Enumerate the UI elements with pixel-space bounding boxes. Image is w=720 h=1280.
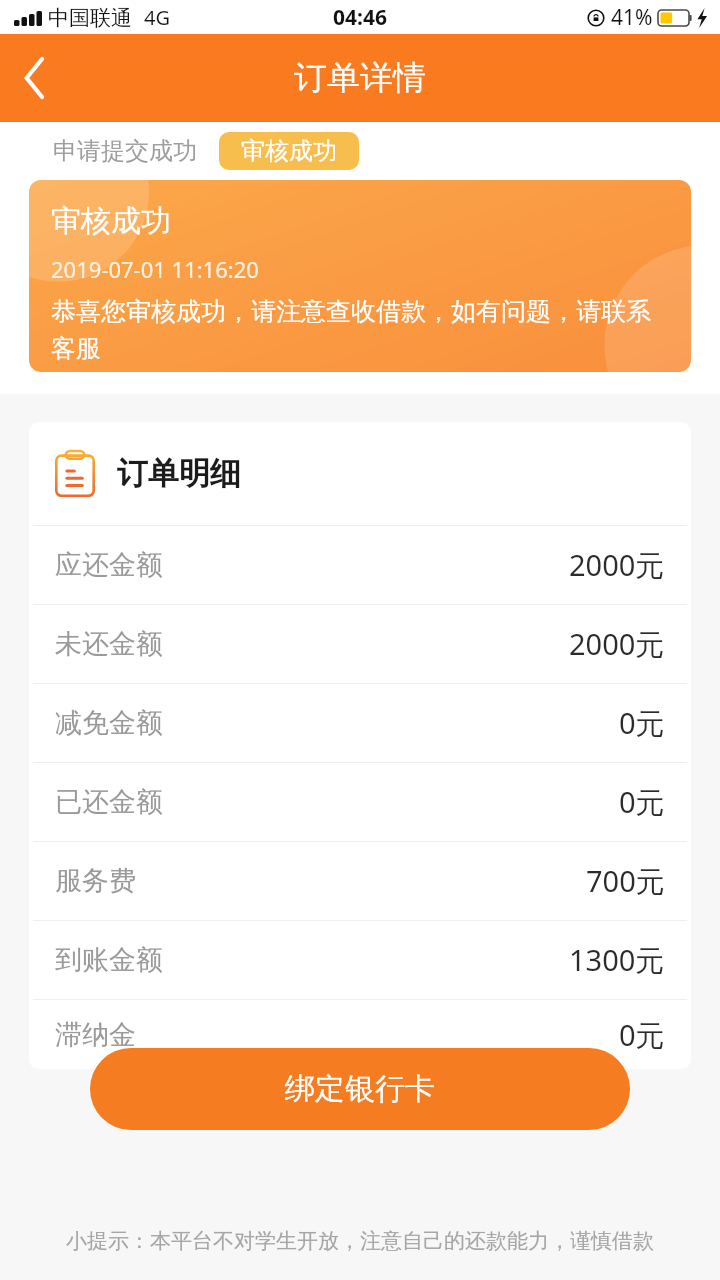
- button[interactable]: 到账金额: [29, 921, 691, 999]
- staticText: 申请提交成功: [53, 136, 197, 166]
- button[interactable]: Back: [0, 43, 70, 113]
- staticText: 04:46: [333, 3, 387, 32]
- button[interactable]: 应还金额: [29, 526, 691, 604]
- button[interactable]: 服务费: [29, 842, 691, 920]
- staticText: 审核成功: [241, 136, 337, 166]
- staticText: 绑定银行卡: [285, 1070, 435, 1108]
- staticText: 2000元: [569, 545, 665, 585]
- button[interactable]: 减免金额: [29, 684, 691, 762]
- button[interactable]: 审核成功: [219, 132, 359, 170]
- button[interactable]: 审核成功: [29, 180, 691, 372]
- staticText: 订单明细: [117, 454, 241, 493]
- staticText: 4G: [144, 4, 170, 31]
- staticText: 700元: [586, 861, 665, 901]
- button[interactable]: 未还金额: [29, 605, 691, 683]
- staticText: 小提示：本平台不对学生开放，注意自己的还款能力，谨慎借款: [66, 1228, 654, 1254]
- staticText: 恭喜您审核成功，请注意查收借款，如有问题，请联系客服: [51, 296, 663, 364]
- staticText: 中国联通: [48, 5, 132, 31]
- staticText: 到账金额: [55, 943, 163, 977]
- staticText: 减免金额: [55, 706, 163, 740]
- staticText: 已还金额: [55, 785, 163, 819]
- staticText: 审核成功: [51, 202, 171, 240]
- staticText: 未还金额: [55, 627, 163, 661]
- staticText: 0元: [619, 1015, 665, 1055]
- staticText: 0元: [619, 703, 665, 743]
- staticText: 滞纳金: [55, 1018, 136, 1052]
- staticText: 1300元: [569, 940, 665, 980]
- button[interactable]: 绑定银行卡: [90, 1048, 630, 1130]
- staticText: 应还金额: [55, 548, 163, 582]
- staticText: 0元: [619, 782, 665, 822]
- staticText: 41%: [611, 3, 653, 32]
- button[interactable]: 滞纳金: [29, 1000, 691, 1069]
- button[interactable]: 申请提交成功: [53, 136, 197, 166]
- staticText: 2000元: [569, 624, 665, 664]
- button[interactable]: 已还金额: [29, 763, 691, 841]
- staticText: 服务费: [55, 864, 136, 898]
- staticText: 2019-07-01 11:16:20: [51, 254, 259, 284]
- staticText: 订单详情: [294, 57, 426, 99]
